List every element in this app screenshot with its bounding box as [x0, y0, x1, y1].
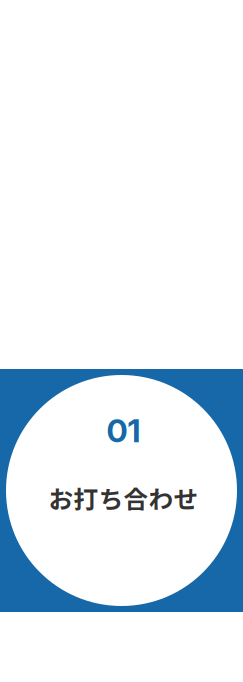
staticText: 01 [106, 411, 140, 450]
staticText: お打ち合わせ [48, 480, 198, 516]
button[interactable]: 01 [0, 369, 243, 612]
